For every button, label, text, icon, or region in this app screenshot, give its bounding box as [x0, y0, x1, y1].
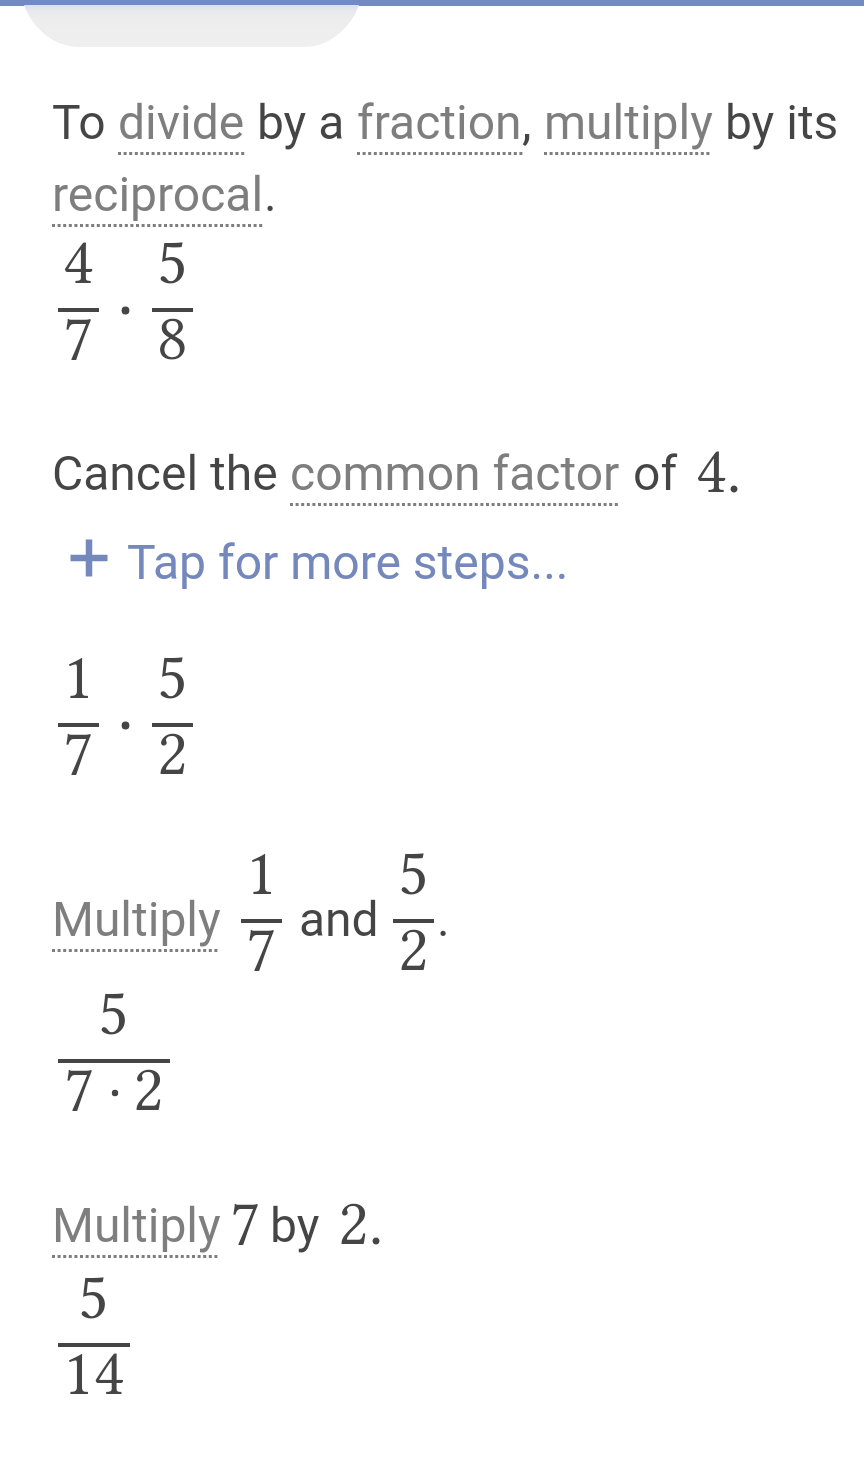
staticText: fraction: [357, 94, 522, 150]
staticText: 4: [63, 224, 94, 299]
button[interactable]: fraction: [357, 94, 522, 155]
staticText: 2.: [338, 1185, 384, 1260]
staticText: by: [270, 1197, 320, 1253]
staticText: 7: [246, 911, 277, 986]
staticText: multiply: [544, 94, 713, 150]
staticText: Cancel the: [52, 445, 290, 501]
staticText: To: [52, 94, 118, 150]
button[interactable]: Steps tab: [24, 5, 359, 47]
staticText: ,: [522, 94, 544, 150]
staticText: .: [437, 891, 450, 947]
staticText: common factor: [290, 445, 620, 501]
staticText: 1: [246, 835, 277, 910]
staticText: 7: [63, 300, 94, 375]
staticText: by a: [245, 94, 357, 150]
button[interactable]: common factor: [290, 445, 620, 506]
staticText: 4.: [696, 433, 742, 508]
staticText: and: [299, 891, 379, 947]
button[interactable]: Multiply: [52, 1197, 221, 1258]
staticText: 7: [64, 1051, 95, 1126]
staticText: 5: [398, 835, 429, 910]
staticText: 2: [133, 1051, 164, 1126]
staticText: 7: [230, 1185, 261, 1260]
button[interactable]: Expand step: [52, 520, 572, 600]
staticText: 2: [398, 911, 429, 986]
staticText: 2: [157, 715, 188, 790]
staticText: Multiply: [52, 1197, 221, 1253]
button[interactable]: reciprocal: [52, 166, 264, 227]
button[interactable]: Multiply: [52, 891, 221, 952]
staticText: divide: [118, 94, 245, 150]
staticText: 5: [98, 975, 129, 1050]
staticText: 7: [63, 715, 94, 790]
staticText: 1: [63, 639, 94, 714]
staticText: .: [264, 166, 277, 222]
other: Expand step: [63, 532, 115, 584]
staticText: Tap for more steps...: [127, 534, 569, 590]
staticText: 8: [157, 300, 188, 375]
staticText: of: [633, 445, 678, 501]
button[interactable]: multiply: [544, 94, 713, 155]
staticText: reciprocal: [52, 166, 264, 222]
staticText: 14: [63, 1335, 125, 1410]
staticText: 5: [78, 1259, 109, 1334]
staticText: by its: [713, 94, 839, 150]
button[interactable]: divide: [118, 94, 245, 155]
staticText: 5: [157, 224, 188, 299]
staticText: Multiply: [52, 891, 221, 947]
staticText: 5: [157, 639, 188, 714]
